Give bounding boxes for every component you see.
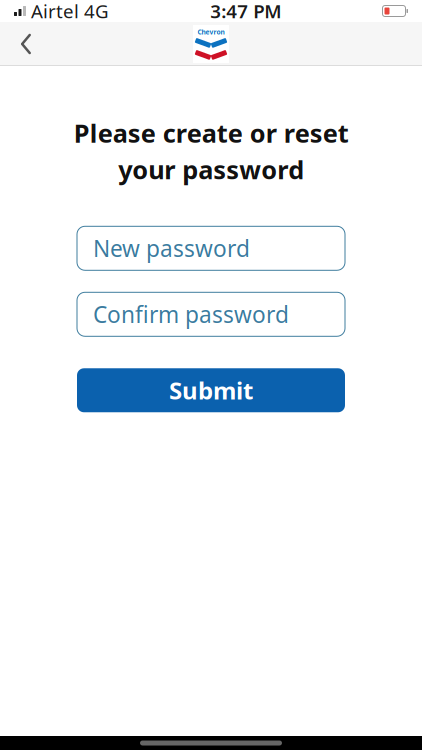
- staticText: Submit: [169, 374, 253, 406]
- staticText: 3:47 PM: [210, 0, 281, 23]
- staticText: Please create or reset: [73, 116, 348, 150]
- staticText: Airtel: [31, 0, 79, 23]
- button[interactable]: New password: [77, 226, 345, 270]
- button[interactable]: Back: [0, 22, 52, 66]
- staticText: 4G: [84, 0, 109, 23]
- staticText: Confirm password: [93, 299, 289, 329]
- button[interactable]: Confirm password: [77, 292, 345, 336]
- staticText: your password: [118, 153, 304, 186]
- button[interactable]: Submit: [77, 368, 345, 412]
- staticText: New password: [93, 233, 250, 263]
- staticText: Chevron: [197, 28, 224, 36]
